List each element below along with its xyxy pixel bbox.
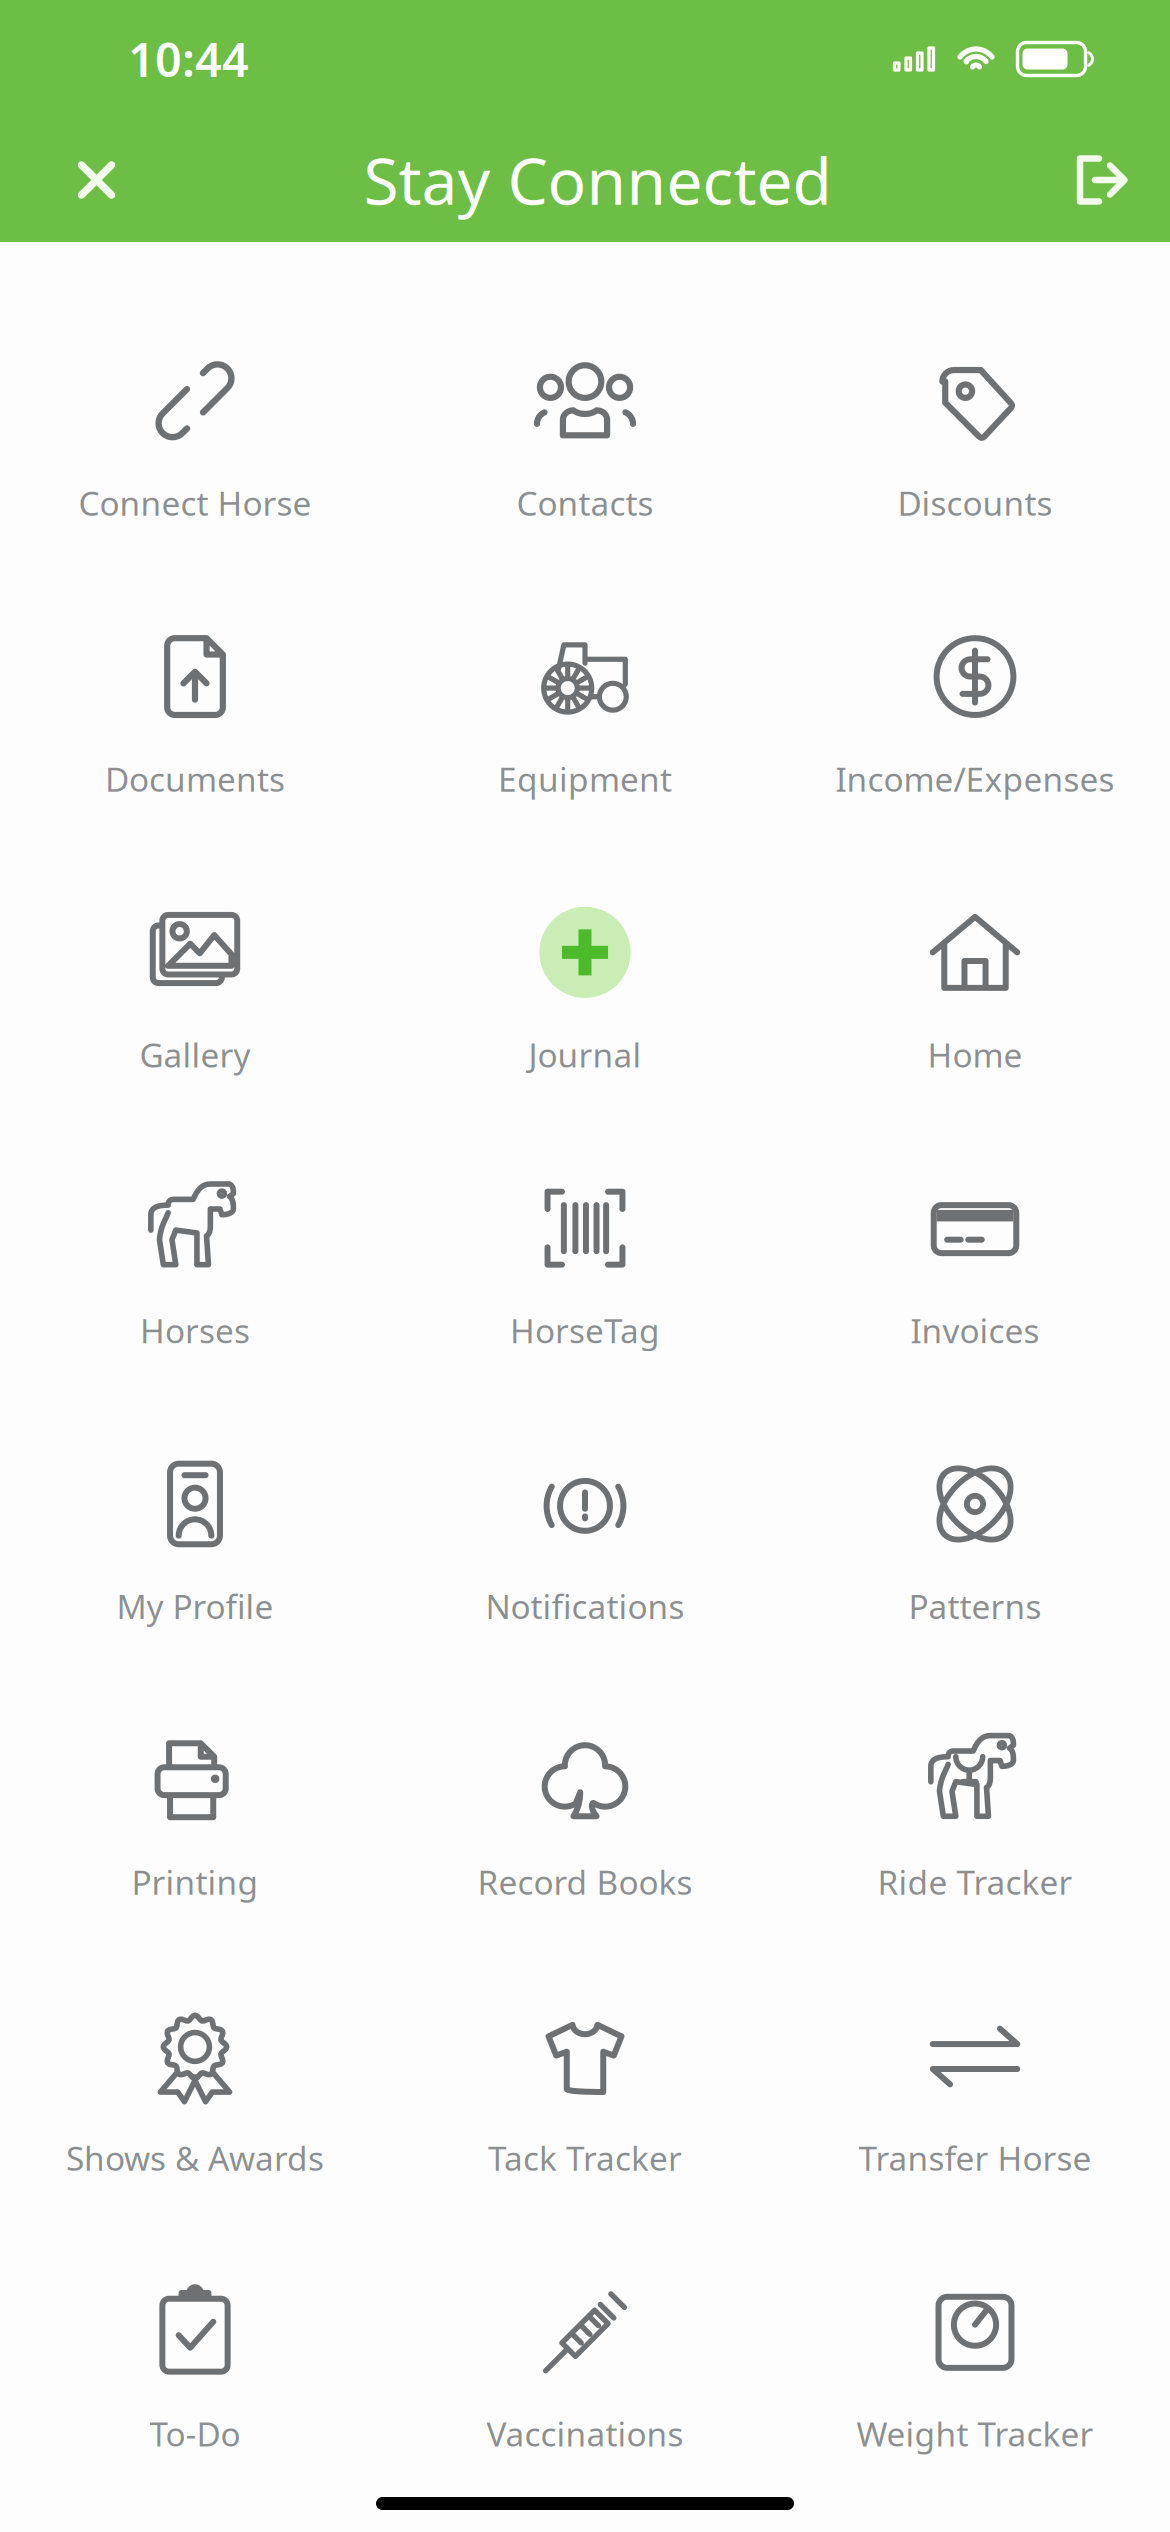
staticText: 10:44 (128, 28, 249, 90)
staticText: Horses (140, 1308, 250, 1352)
staticText: My Profile (116, 1584, 273, 1628)
staticText: Patterns (908, 1584, 1041, 1628)
staticText: Notifications (485, 1584, 684, 1628)
button[interactable]: Documents (0, 518, 390, 794)
staticText: Weight Tracker (856, 2411, 1093, 2456)
staticText: Contacts (516, 481, 653, 525)
staticText: Record Books (477, 1860, 692, 1904)
button[interactable]: Vaccinations (390, 2173, 780, 2448)
staticText: Stay Connected (363, 137, 831, 222)
staticText: Gallery (139, 1032, 250, 1077)
button[interactable]: Patterns (780, 1345, 1170, 1621)
button[interactable]: Close (0, 131, 155, 228)
button[interactable]: Horses (0, 1069, 390, 1345)
staticText: Equipment (498, 757, 672, 801)
staticText: Printing (131, 1860, 258, 1904)
button[interactable]: Tack Tracker (390, 1897, 780, 2173)
staticText: Transfer Horse (858, 2136, 1091, 2180)
staticText: HorseTag (510, 1308, 660, 1352)
button[interactable]: Shows & Awards (0, 1897, 390, 2173)
staticText: Ride Tracker (877, 1860, 1072, 1904)
staticText: Home (927, 1032, 1022, 1077)
staticText: Discounts (897, 481, 1052, 525)
staticText: Shows & Awards (66, 2136, 324, 2180)
staticText: Vaccinations (486, 2411, 683, 2456)
button[interactable]: Invoices (780, 1069, 1170, 1345)
button[interactable]: My Profile (0, 1345, 390, 1621)
staticText: Invoices (910, 1308, 1039, 1352)
button[interactable]: Weight Tracker (780, 2173, 1170, 2448)
button[interactable]: Journal (390, 794, 780, 1069)
button[interactable]: Transfer Horse (780, 1897, 1170, 2173)
button[interactable]: Ride Tracker (780, 1621, 1170, 1897)
staticText: Journal (528, 1032, 641, 1077)
button[interactable]: Income/Expenses (780, 518, 1170, 794)
staticText: Tack Tracker (488, 2136, 682, 2180)
button[interactable]: Gallery (0, 794, 390, 1069)
button[interactable]: Contacts (390, 242, 780, 518)
button[interactable]: HorseTag (390, 1069, 780, 1345)
button[interactable]: Equipment (390, 518, 780, 794)
staticText: Income/Expenses (835, 757, 1114, 801)
button[interactable]: To-Do (0, 2173, 390, 2448)
staticText: To-Do (149, 2411, 240, 2456)
button[interactable]: Discounts (780, 242, 1170, 518)
button[interactable]: Record Books (390, 1621, 780, 1897)
button[interactable]: Connect Horse (0, 242, 390, 518)
button[interactable]: Sign out (1040, 131, 1170, 229)
button[interactable]: Home (780, 794, 1170, 1069)
button[interactable]: Printing (0, 1621, 390, 1897)
staticText: Connect Horse (78, 481, 311, 525)
staticText: Documents (105, 757, 285, 801)
button[interactable]: Notifications (390, 1345, 780, 1621)
